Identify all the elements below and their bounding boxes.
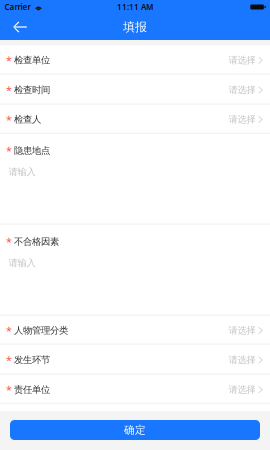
staticText: *: [6, 234, 12, 249]
staticText: *: [6, 112, 12, 127]
button[interactable]: *: [0, 375, 270, 404]
staticText: 请输入: [9, 166, 36, 178]
staticText: 责任单位: [14, 384, 50, 395]
staticText: 填报: [123, 20, 147, 34]
button[interactable]: *: [0, 45, 270, 75]
button[interactable]: Back: [0, 15, 36, 39]
staticText: 11:11 AM: [117, 2, 153, 12]
staticText: 确定: [124, 423, 146, 436]
staticText: 请选择: [228, 114, 255, 125]
staticText: 请输入: [9, 257, 36, 269]
staticText: 发生环节: [14, 354, 50, 366]
staticText: *: [6, 323, 12, 338]
staticText: *: [6, 53, 12, 67]
staticText: *: [6, 353, 12, 367]
button[interactable]: 确定: [10, 420, 260, 440]
button[interactable]: *: [0, 75, 270, 105]
button[interactable]: *: [0, 105, 270, 134]
staticText: *: [6, 143, 12, 158]
button[interactable]: *: [0, 345, 270, 375]
button[interactable]: *: [0, 225, 270, 316]
staticText: 不合格因素: [14, 236, 59, 247]
button[interactable]: *: [0, 134, 270, 225]
staticText: 请选择: [228, 54, 255, 66]
staticText: 请选择: [228, 325, 255, 336]
staticText: 隐患地点: [14, 145, 50, 156]
staticText: 检查人: [14, 114, 41, 125]
staticText: *: [6, 83, 12, 97]
staticText: 请选择: [228, 354, 255, 366]
staticText: 检查时间: [14, 84, 50, 96]
staticText: 请选择: [228, 84, 255, 96]
staticText: 人物管理分类: [14, 325, 68, 336]
staticText: Carrier: [5, 2, 31, 12]
staticText: 请选择: [228, 384, 255, 395]
staticText: *: [6, 382, 12, 397]
staticText: 检查单位: [14, 54, 50, 66]
button[interactable]: *: [0, 316, 270, 345]
